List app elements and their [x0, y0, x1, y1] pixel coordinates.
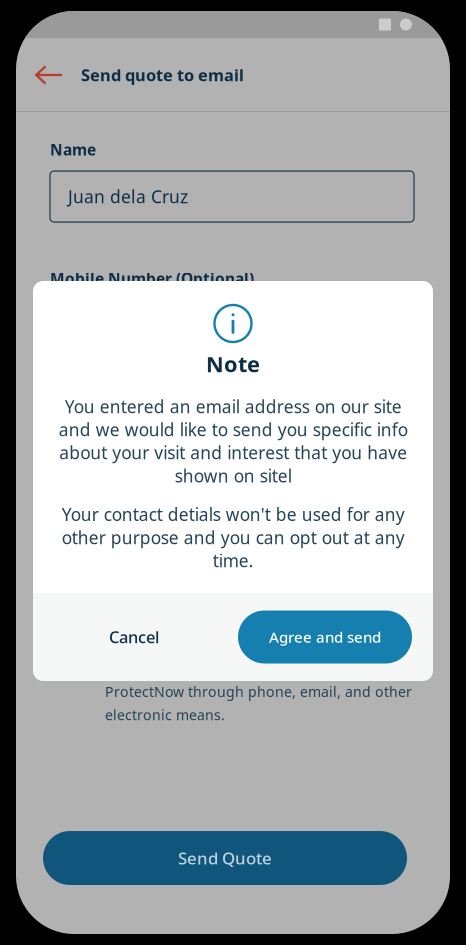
staticText: Send Quote [178, 847, 272, 869]
staticText: You entered an email address on our site… [58, 395, 407, 487]
button[interactable]: Back [26, 52, 72, 98]
staticText: Name [50, 139, 96, 160]
staticText: Agree and send [269, 627, 381, 647]
staticText: ProtectNow through phone, email, and oth… [105, 682, 412, 701]
staticText: Juan dela Cruz [68, 185, 188, 208]
staticText: Your contact detials won't be used for a… [61, 502, 404, 572]
staticText: Mobile Number (Optional) [50, 268, 254, 289]
button[interactable]: Cancel [86, 610, 182, 663]
staticText: electronic means. [105, 705, 225, 724]
button[interactable]: Send Quote [43, 831, 407, 885]
staticText: Note [206, 349, 260, 379]
button[interactable]: Agree and send [238, 610, 412, 663]
staticText: Cancel [109, 626, 159, 648]
staticText: Send quote to email [81, 64, 244, 86]
